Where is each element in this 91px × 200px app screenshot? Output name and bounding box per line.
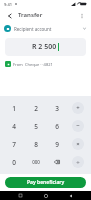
- button[interactable]: ÷: [72, 156, 84, 168]
- staticText: 9:41: [4, 2, 12, 7]
- button[interactable]: 4: [7, 119, 21, 133]
- staticText: Transfer: [18, 11, 43, 19]
- button[interactable]: 000: [29, 155, 43, 169]
- staticText: 5: [34, 122, 38, 131]
- staticText: +: [76, 104, 80, 112]
- staticText: 000: [32, 159, 40, 165]
- button[interactable]: 0: [7, 155, 21, 169]
- button[interactable]: Back: [4, 10, 15, 21]
- staticText: R 2 500: [32, 42, 57, 52]
- button[interactable]: 5: [29, 119, 43, 133]
- button[interactable]: 7: [7, 137, 21, 151]
- staticText: 9: [55, 140, 59, 149]
- button[interactable]: ×: [72, 138, 84, 150]
- staticText: 0: [12, 158, 16, 167]
- button[interactable]: Recent apps: [16, 191, 25, 200]
- staticText: ÷: [76, 158, 80, 166]
- button[interactable]: R 2 500: [5, 38, 86, 56]
- button[interactable]: 6: [50, 119, 64, 133]
- staticText: Pay beneficiary: [27, 179, 65, 186]
- staticText: From Cheque ···4821: [13, 62, 53, 67]
- staticText: −: [76, 122, 80, 130]
- button[interactable]: 8: [29, 137, 43, 151]
- button[interactable]: Backspace: [50, 155, 64, 169]
- button[interactable]: Home: [41, 191, 50, 200]
- staticText: 3: [55, 104, 59, 113]
- button[interactable]: +: [72, 102, 84, 114]
- button[interactable]: 3: [50, 101, 64, 115]
- staticText: 1: [12, 104, 16, 113]
- button[interactable]: Recipient account: [0, 22, 91, 35]
- button[interactable]: Pay beneficiary: [5, 177, 86, 188]
- staticText: 7: [12, 140, 16, 149]
- button[interactable]: 2: [29, 101, 43, 115]
- staticText: 2: [34, 104, 38, 113]
- staticText: 4: [12, 122, 16, 131]
- button[interactable]: −: [72, 120, 84, 132]
- staticText: 6: [55, 122, 59, 131]
- button[interactable]: 9: [50, 137, 64, 151]
- button[interactable]: Back: [66, 191, 75, 200]
- staticText: 8: [34, 140, 38, 149]
- button[interactable]: More options: [76, 10, 87, 21]
- staticText: Recipient account: [14, 26, 52, 32]
- button[interactable]: 1: [7, 101, 21, 115]
- button[interactable]: From Cheque ···4821: [0, 59, 91, 69]
- staticText: ×: [76, 140, 80, 148]
